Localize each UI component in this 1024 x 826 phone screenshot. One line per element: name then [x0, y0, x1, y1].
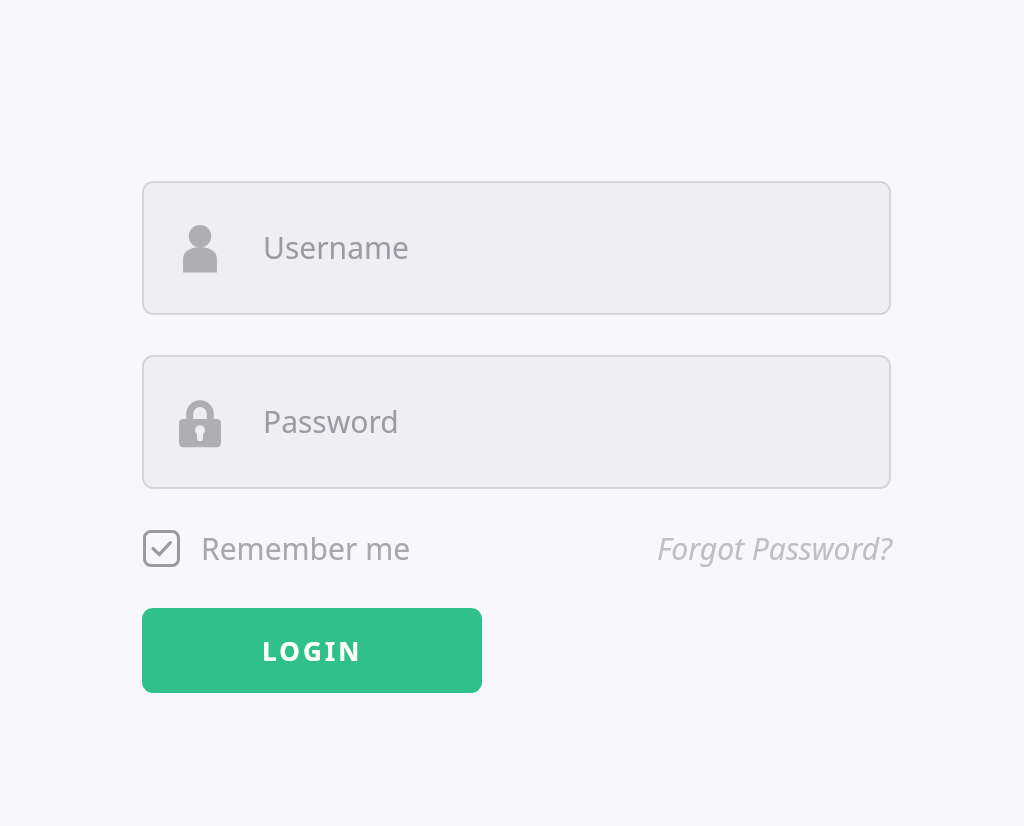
staticText: Username — [263, 227, 409, 268]
staticText: Remember me — [201, 528, 411, 569]
staticText: Password — [263, 401, 399, 442]
button[interactable]: Username — [142, 181, 891, 315]
button[interactable]: Remember me — [140, 524, 411, 572]
button[interactable]: Password — [142, 355, 891, 489]
staticText: Forgot Password? — [656, 528, 892, 569]
staticText: LOGIN — [262, 633, 363, 668]
button[interactable]: LOGIN — [142, 608, 482, 693]
button[interactable]: Forgot Password? — [600, 522, 892, 574]
